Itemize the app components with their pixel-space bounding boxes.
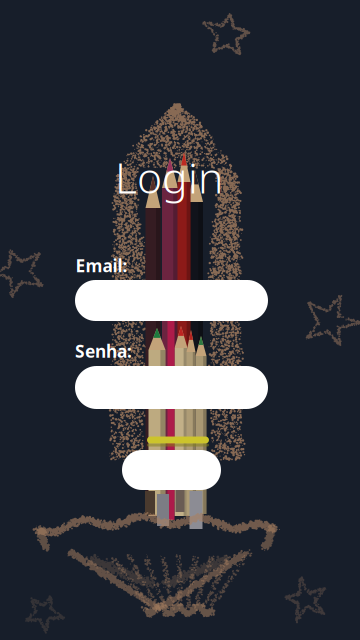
staticText: Login <box>115 149 223 205</box>
staticText: Email: <box>75 254 127 277</box>
button[interactable]: Senha <box>75 366 268 409</box>
button[interactable]: Entrar <box>122 450 221 490</box>
button[interactable]: Email <box>75 280 268 321</box>
staticText: Senha: <box>75 339 132 362</box>
